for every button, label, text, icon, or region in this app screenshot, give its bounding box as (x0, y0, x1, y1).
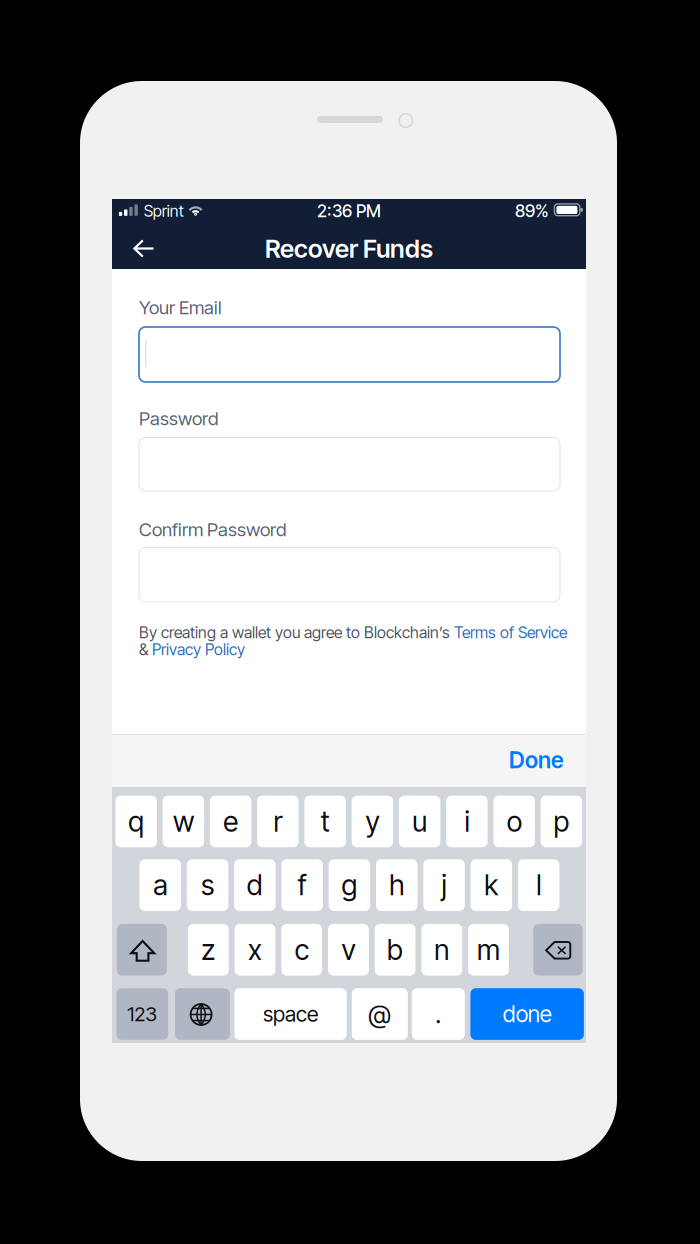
button[interactable]: q (115, 796, 157, 847)
staticText: n (434, 933, 449, 967)
button[interactable]: @ (352, 988, 408, 1040)
staticText: h (389, 868, 404, 902)
button[interactable]: t (304, 796, 346, 847)
staticText: v (341, 933, 355, 967)
staticText: space (263, 1001, 318, 1027)
button[interactable]: k (471, 859, 512, 911)
staticText: b (387, 933, 403, 967)
staticText: e (223, 804, 238, 838)
staticText: k (484, 868, 498, 902)
button[interactable]: o (493, 796, 535, 847)
button[interactable]: c (281, 924, 322, 976)
staticText: i (464, 804, 469, 838)
button[interactable]: h (376, 859, 417, 911)
button[interactable]: space (234, 988, 347, 1040)
button[interactable]: done (470, 988, 584, 1040)
staticText: z (201, 933, 215, 967)
button[interactable]: y (352, 796, 393, 847)
button[interactable]: n (421, 924, 462, 976)
button[interactable]: j (423, 859, 465, 911)
staticText: . (435, 999, 441, 1029)
staticText: 2:36 PM (317, 200, 381, 221)
staticText: t (321, 804, 330, 838)
staticText: 89% (515, 200, 549, 221)
staticText: y (365, 804, 379, 838)
staticText: x (248, 933, 262, 967)
staticText: Confirm Password (139, 518, 286, 541)
button[interactable]: w (163, 796, 204, 847)
button[interactable]: m (468, 924, 509, 976)
staticText: Done (509, 746, 564, 774)
button[interactable]: b (375, 924, 415, 976)
button[interactable]: r (257, 796, 299, 847)
button[interactable]: f (281, 859, 323, 911)
button[interactable]: e (210, 796, 251, 847)
staticText: d (247, 868, 263, 902)
button[interactable]: Done (484, 735, 564, 785)
staticText: j (441, 868, 446, 902)
button[interactable]: l (518, 859, 559, 911)
staticText: r (273, 804, 282, 838)
button[interactable]: z (188, 924, 229, 976)
staticText: m (477, 933, 500, 967)
button[interactable]: p (541, 796, 582, 847)
staticText: w (173, 804, 194, 838)
button[interactable]: Back (121, 228, 165, 268)
button[interactable]: v (328, 924, 369, 976)
staticText: @ (368, 999, 391, 1029)
staticText: Recover Funds (265, 233, 433, 264)
staticText: Password (139, 407, 218, 430)
button[interactable]: s (187, 859, 228, 911)
staticText: l (536, 868, 541, 902)
staticText: 123 (127, 1002, 157, 1026)
button[interactable]: Shift (117, 924, 167, 976)
staticText: o (507, 804, 522, 838)
button[interactable]: d (234, 859, 276, 911)
staticText: p (553, 804, 569, 838)
staticText: u (412, 804, 427, 838)
staticText: Your Email (139, 296, 222, 319)
button[interactable]: Delete (533, 924, 583, 976)
button[interactable]: i (446, 796, 488, 847)
button[interactable]: Next keyboard (175, 988, 230, 1040)
staticText: By creating a wallet you agree to Blockc… (139, 623, 567, 659)
button[interactable]: g (329, 859, 370, 911)
button[interactable]: x (235, 924, 275, 976)
button[interactable]: u (399, 796, 440, 847)
button[interactable]: a (139, 859, 181, 911)
staticText: c (295, 933, 309, 967)
staticText: a (153, 868, 167, 902)
button[interactable]: 123 (116, 988, 168, 1040)
staticText: s (201, 868, 214, 902)
staticText: Sprint (144, 201, 184, 221)
staticText: f (298, 868, 307, 902)
button[interactable]: . (412, 988, 465, 1040)
staticText: done (503, 1000, 552, 1028)
staticText: g (341, 868, 357, 902)
staticText: q (128, 804, 144, 838)
